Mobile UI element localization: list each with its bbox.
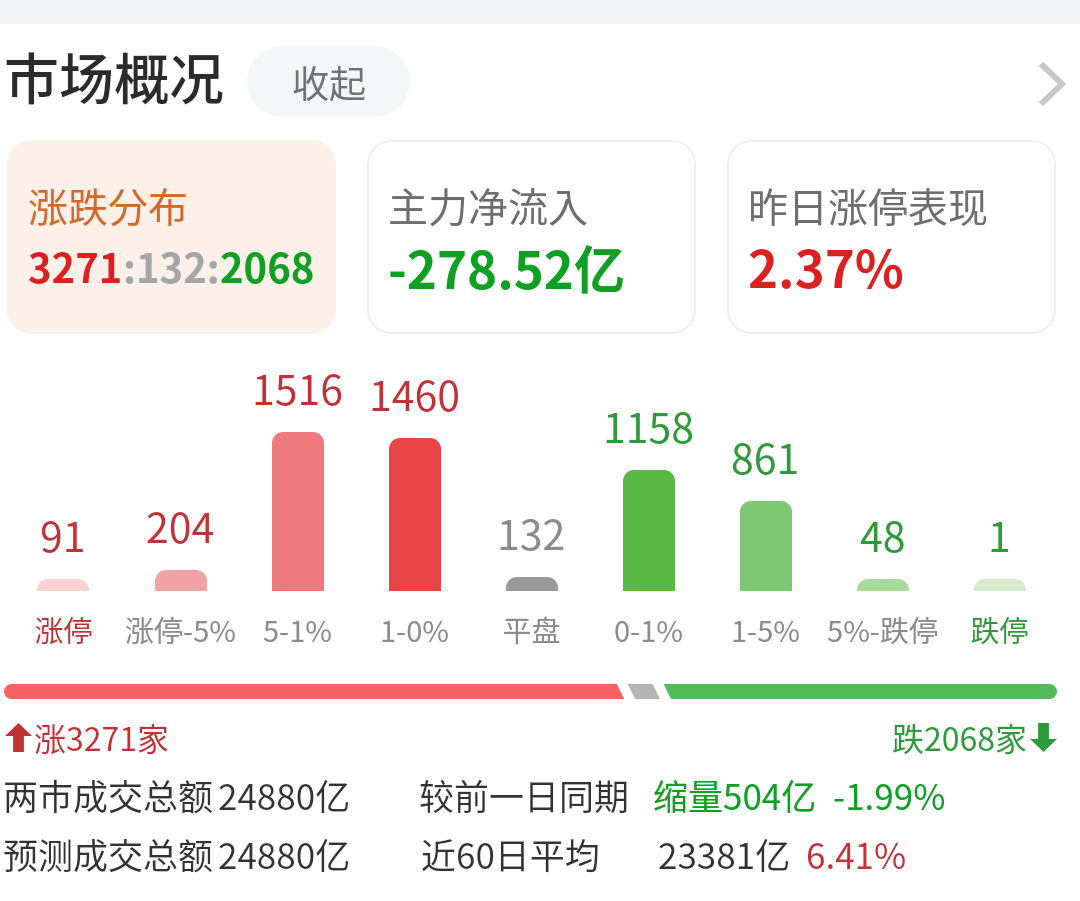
staticText: 较前一日同期 [419, 769, 630, 820]
staticText: 24880亿 [218, 828, 351, 879]
staticText: 主力净流入 [388, 176, 588, 234]
button[interactable]: Expand [1016, 43, 1080, 107]
staticText: 平盘 [502, 608, 561, 650]
staticText: 1-0% [380, 608, 449, 650]
staticText: 861 [731, 426, 800, 485]
staticText: 市场概况 [4, 35, 225, 115]
staticText: 1516 [252, 357, 344, 416]
staticText: 跌停 [970, 608, 1029, 650]
staticText: 预测成交总额 [3, 828, 214, 879]
staticText: 1-5% [731, 608, 800, 650]
staticText: 缩量504亿 [653, 769, 817, 820]
staticText: 两市成交总额 [3, 769, 214, 820]
staticText: 204 [146, 495, 215, 554]
staticText: 6.41% [806, 828, 907, 879]
staticText: 5-1% [263, 608, 332, 650]
staticText: 48 [860, 504, 906, 563]
staticText: 0-1% [614, 608, 683, 650]
button[interactable]: 收起 [247, 46, 410, 117]
button[interactable]: 市场概况 [0, 16, 1080, 134]
staticText: -1.99% [833, 769, 946, 820]
staticText: 昨日涨停表现 [748, 176, 988, 234]
staticText: -278.52亿 [388, 230, 625, 304]
staticText: 涨停 [34, 608, 93, 650]
staticText: 1460 [369, 363, 461, 422]
staticText: 91 [40, 504, 86, 563]
staticText: 24880亿 [218, 769, 351, 820]
staticText: 跌2068家 [892, 714, 1028, 760]
button[interactable]: 昨日涨停表现 [727, 140, 1056, 334]
staticText: 2068 [220, 237, 315, 295]
staticText: 涨3271家 [34, 714, 170, 760]
staticText: 2.37% [748, 229, 904, 303]
button[interactable]: 涨跌分布 [7, 140, 336, 334]
button[interactable]: 主力净流入 [367, 140, 696, 334]
staticText: 5%-跌停 [827, 608, 938, 650]
staticText: 收起 [292, 55, 366, 109]
staticText: 1 [988, 504, 1011, 563]
staticText: 涨跌分布 [28, 176, 188, 234]
staticText: 23381亿 [658, 828, 791, 879]
staticText: 3271 [28, 237, 123, 295]
staticText: :132: [123, 237, 220, 295]
staticText: 1158 [603, 395, 695, 454]
staticText: 132 [497, 502, 566, 561]
staticText: 涨停-5% [125, 608, 236, 650]
staticText: 近60日平均 [421, 828, 600, 879]
